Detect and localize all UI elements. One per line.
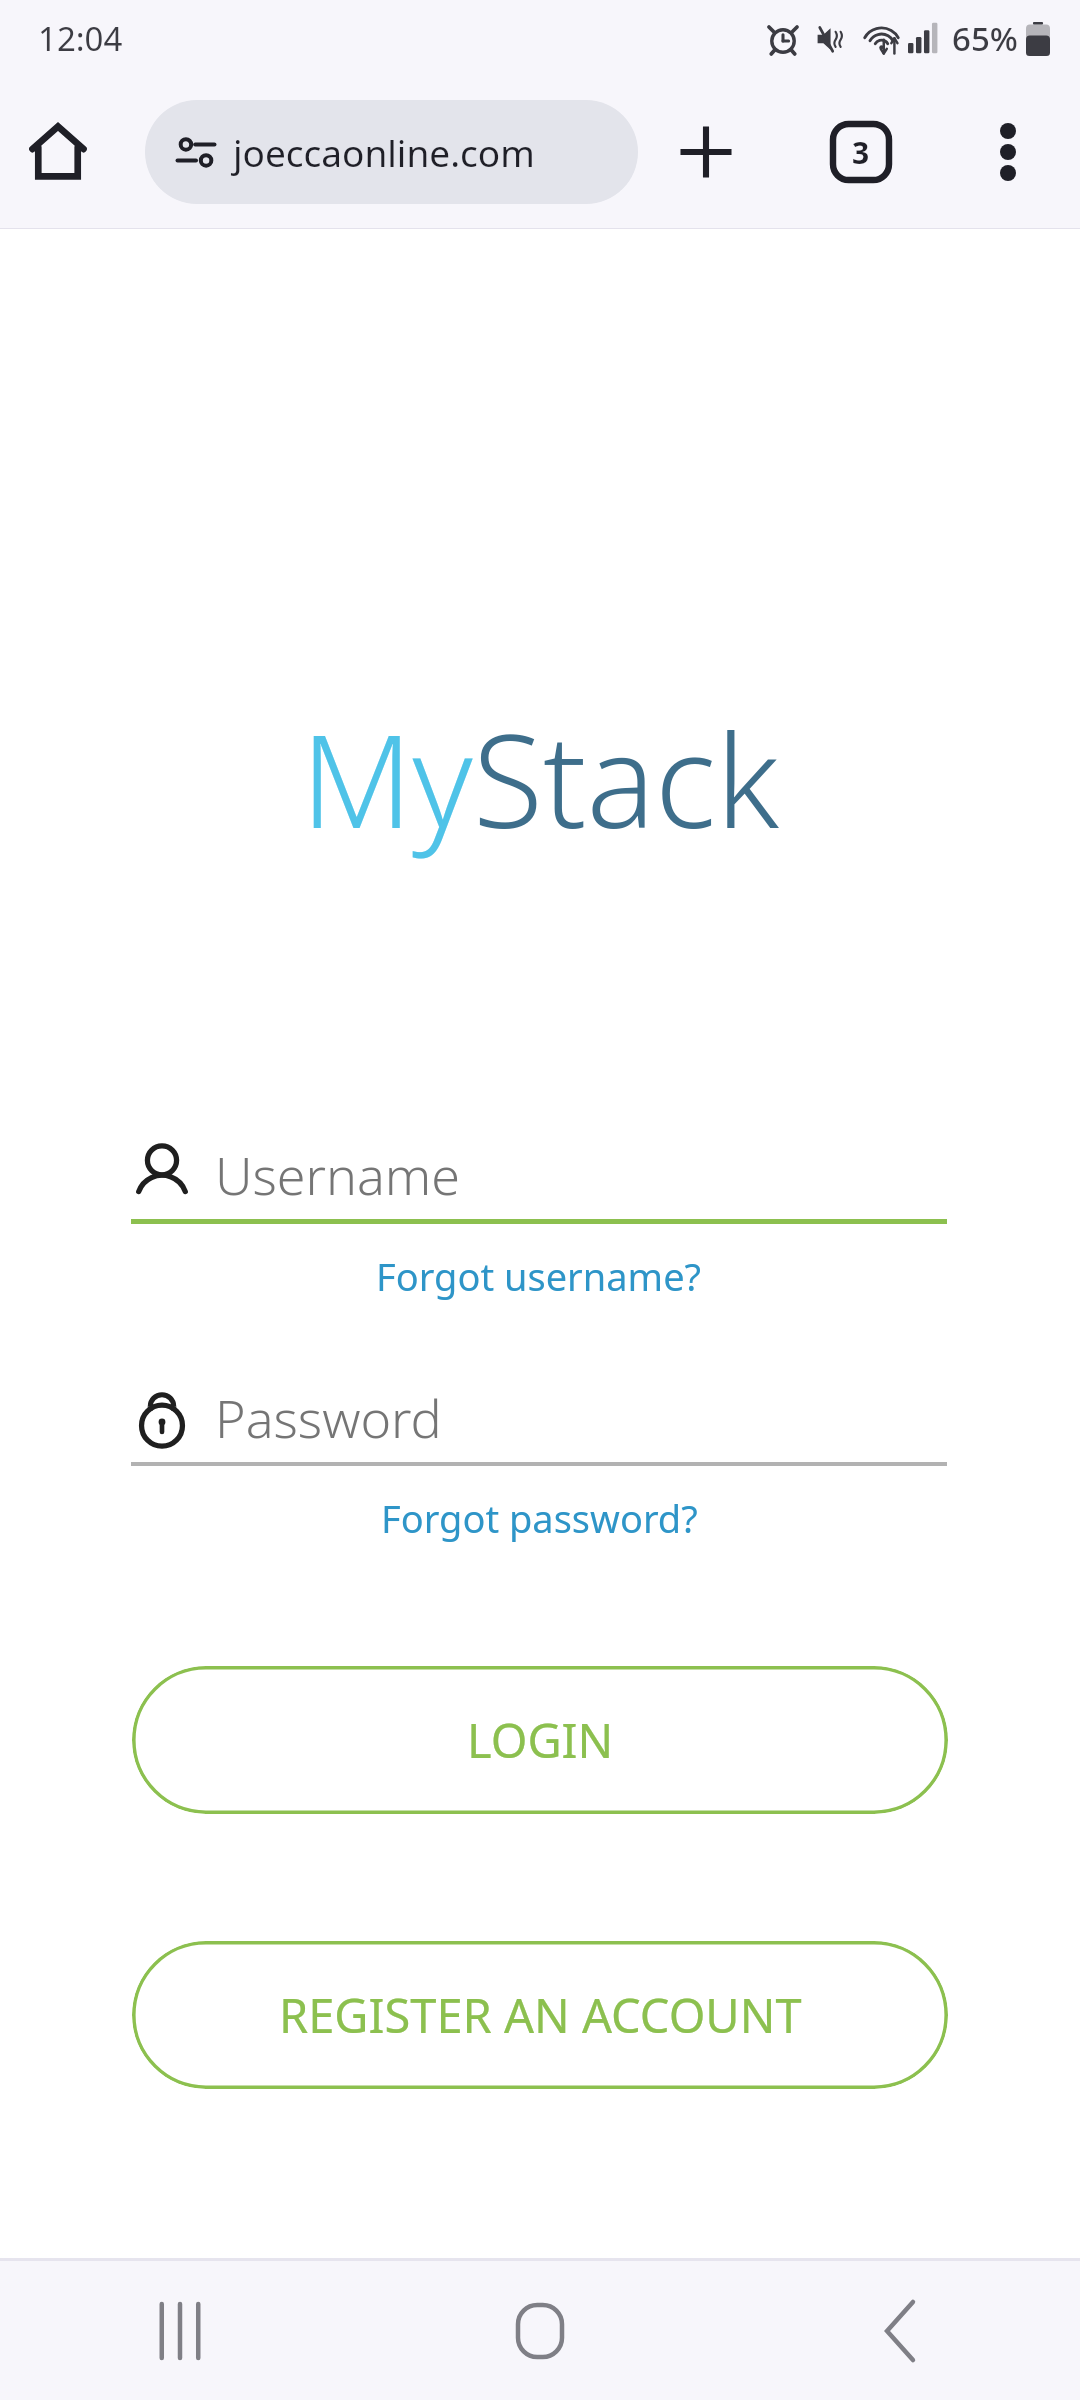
button[interactable]: Recent apps: [0, 2261, 360, 2400]
staticText: joeccaonline.com: [233, 127, 535, 177]
button[interactable]: Password: [131, 1372, 947, 1462]
button[interactable]: More options: [962, 106, 1054, 198]
staticText: 12:04: [38, 16, 123, 61]
button[interactable]: LOGIN: [132, 1666, 948, 1814]
staticText: REGISTER AN ACCOUNT: [279, 1983, 802, 2047]
button[interactable]: Forgot password?: [375, 1488, 704, 1548]
button[interactable]: REGISTER AN ACCOUNT: [132, 1941, 948, 2089]
staticText: 3: [852, 132, 870, 173]
staticText: My: [301, 691, 473, 865]
staticText: Forgot password?: [381, 1492, 698, 1544]
staticText: Forgot username?: [376, 1250, 702, 1302]
button[interactable]: New tab: [660, 106, 752, 198]
button[interactable]: Home: [20, 114, 96, 190]
button[interactable]: Forgot username?: [370, 1246, 708, 1306]
staticText: Password: [215, 1382, 442, 1453]
button[interactable]: Back: [720, 2261, 1080, 2400]
button[interactable]: Tabs, 3 open: [815, 106, 907, 198]
staticText: Username: [215, 1139, 460, 1210]
button[interactable]: joeccaonline.com: [145, 100, 638, 204]
button[interactable]: Home: [360, 2261, 720, 2400]
staticText: LOGIN: [467, 1708, 614, 1772]
staticText: 65%: [952, 16, 1018, 61]
staticText: Stack: [473, 691, 780, 865]
button[interactable]: Username: [131, 1129, 947, 1219]
